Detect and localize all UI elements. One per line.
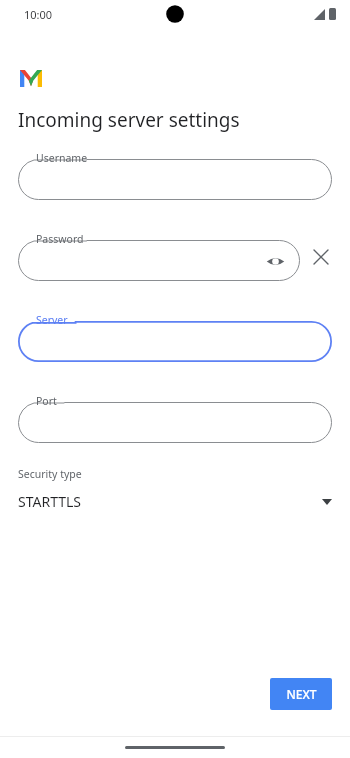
staticText: Incoming server settings — [18, 107, 240, 133]
staticText: 10:00 — [24, 7, 53, 22]
button[interactable]: Clear — [306, 242, 336, 272]
button[interactable]: Show password — [18, 232, 300, 281]
button[interactable]: Show password — [262, 248, 288, 274]
staticText: Username — [36, 151, 88, 165]
button[interactable]: Server — [18, 313, 332, 362]
staticText: Server — [36, 313, 68, 327]
staticText: STARTTLS — [18, 492, 82, 511]
staticText: Security type — [18, 467, 82, 481]
staticText: Port — [36, 394, 57, 408]
button[interactable]: Port — [18, 394, 332, 443]
staticText: NEXT — [286, 686, 317, 702]
button[interactable]: Username — [18, 151, 332, 200]
button[interactable]: Security type — [0, 467, 350, 511]
button[interactable]: NEXT — [270, 678, 332, 710]
staticText: Password — [36, 232, 84, 246]
